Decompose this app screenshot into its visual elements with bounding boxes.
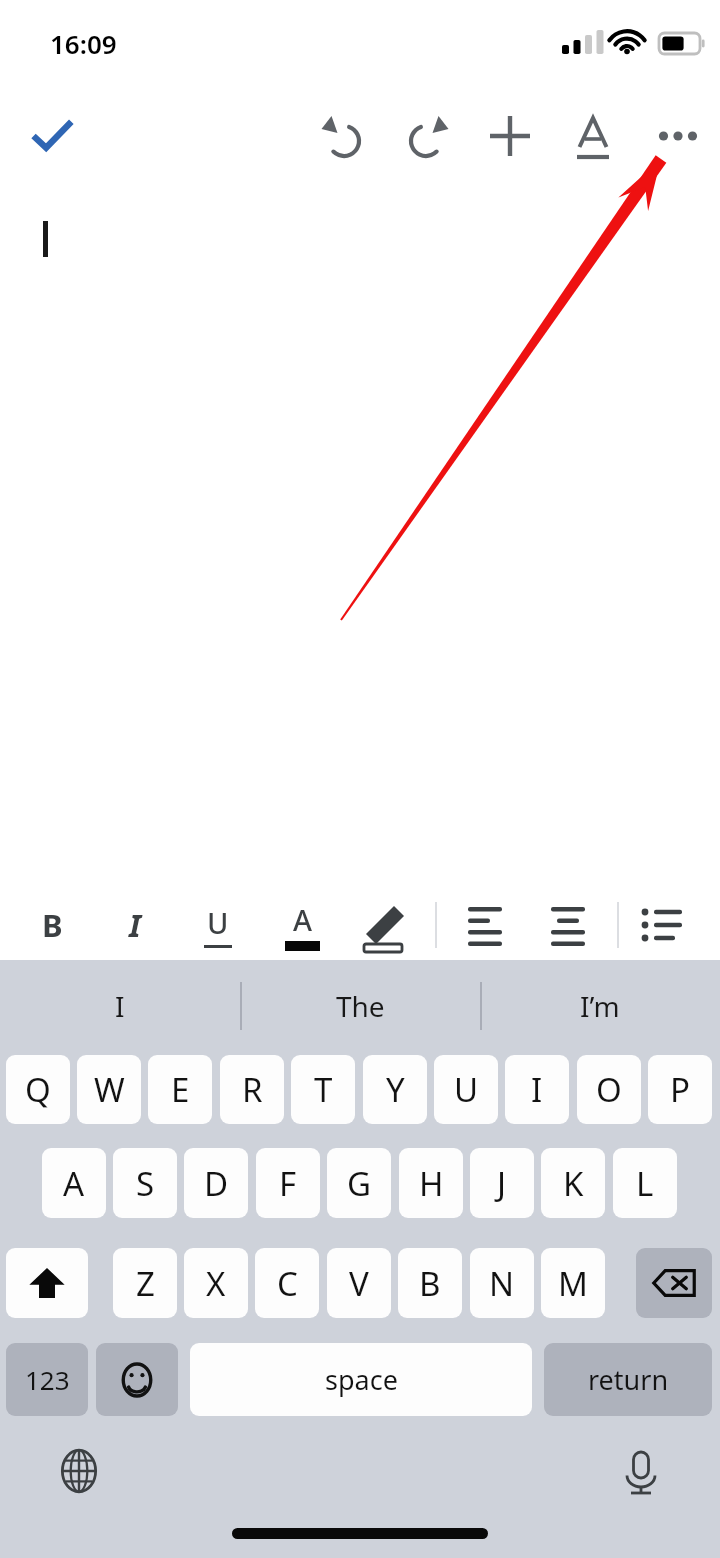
staticText: G: [347, 1161, 372, 1206]
staticText: return: [588, 1361, 669, 1398]
staticText: N: [489, 1261, 515, 1306]
button[interactable]: U: [434, 1055, 498, 1124]
button[interactable]: N: [470, 1248, 534, 1318]
staticText: B: [419, 1261, 441, 1306]
staticText: Y: [386, 1067, 405, 1112]
button[interactable]: R: [220, 1055, 284, 1124]
button[interactable]: More options: [645, 103, 711, 169]
button[interactable]: space: [190, 1343, 532, 1416]
button[interactable]: Bulleted list: [630, 892, 696, 958]
button[interactable]: Numbers: [6, 1343, 88, 1416]
button[interactable]: Undo: [311, 103, 377, 169]
staticText: S: [136, 1161, 155, 1206]
staticText: K: [563, 1161, 584, 1206]
staticText: H: [419, 1161, 444, 1206]
staticText: 16:09: [50, 26, 117, 61]
staticText: U: [207, 903, 229, 942]
staticText: V: [349, 1261, 369, 1306]
staticText: T: [314, 1067, 333, 1112]
button[interactable]: Backspace: [636, 1248, 712, 1318]
staticText: J: [497, 1161, 507, 1206]
button[interactable]: Align center: [535, 892, 601, 958]
button[interactable]: W: [77, 1055, 141, 1124]
button[interactable]: E: [148, 1055, 212, 1124]
staticText: B: [42, 904, 63, 946]
button[interactable]: M: [541, 1248, 605, 1318]
button[interactable]: H: [399, 1148, 463, 1218]
button[interactable]: Q: [6, 1055, 70, 1124]
button[interactable]: Highlight: [352, 892, 418, 958]
button[interactable]: L: [613, 1148, 677, 1218]
button[interactable]: Underline: [185, 892, 251, 958]
staticText: space: [325, 1361, 398, 1398]
staticText: The: [336, 987, 385, 1025]
staticText: R: [242, 1067, 263, 1112]
staticText: O: [596, 1067, 622, 1112]
button[interactable]: Voice input: [606, 1436, 676, 1506]
button[interactable]: Z: [113, 1248, 177, 1318]
staticText: Q: [25, 1067, 51, 1112]
button[interactable]: Bold: [19, 892, 85, 958]
button[interactable]: Emoji: [96, 1343, 178, 1416]
button[interactable]: Shift: [6, 1248, 88, 1318]
button[interactable]: Italic: [102, 892, 168, 958]
button[interactable]: V: [327, 1248, 391, 1318]
button[interactable]: Done: [19, 103, 85, 169]
button[interactable]: P: [648, 1055, 712, 1124]
button[interactable]: Insert: [477, 103, 543, 169]
button[interactable]: C: [255, 1248, 319, 1318]
button[interactable]: B: [398, 1248, 462, 1318]
button[interactable]: I’m: [480, 960, 720, 1052]
button[interactable]: Align left: [452, 892, 518, 958]
button[interactable]: Y: [363, 1055, 427, 1124]
button[interactable]: T: [291, 1055, 355, 1124]
staticText: Z: [136, 1261, 155, 1306]
staticText: M: [558, 1261, 588, 1306]
button[interactable]: X: [184, 1248, 248, 1318]
staticText: L: [636, 1161, 654, 1206]
button[interactable]: Redo: [393, 103, 459, 169]
staticText: 123: [25, 1362, 70, 1397]
staticText: I: [531, 1067, 543, 1112]
button[interactable]: O: [577, 1055, 641, 1124]
button[interactable]: Text format: [560, 103, 626, 169]
staticText: A: [63, 1161, 85, 1206]
button[interactable]: The: [240, 960, 480, 1052]
button[interactable]: K: [541, 1148, 605, 1218]
button[interactable]: G: [327, 1148, 391, 1218]
button[interactable]: I: [505, 1055, 569, 1124]
button[interactable]: Change keyboard: [44, 1436, 114, 1506]
button[interactable]: F: [256, 1148, 320, 1218]
staticText: U: [454, 1067, 479, 1112]
staticText: E: [171, 1067, 190, 1112]
button[interactable]: I: [0, 960, 240, 1052]
button[interactable]: A: [42, 1148, 106, 1218]
button[interactable]: S: [113, 1148, 177, 1218]
staticText: F: [279, 1161, 297, 1206]
staticText: I: [115, 987, 125, 1025]
staticText: I’m: [580, 987, 620, 1025]
staticText: A: [293, 900, 312, 939]
button[interactable]: J: [470, 1148, 534, 1218]
button[interactable]: Return: [544, 1343, 712, 1416]
staticText: C: [277, 1261, 298, 1306]
staticText: I: [129, 904, 141, 946]
staticText: X: [206, 1261, 226, 1306]
staticText: D: [204, 1161, 229, 1206]
button[interactable]: Text color: [269, 892, 335, 958]
button[interactable]: D: [184, 1148, 248, 1218]
staticText: W: [94, 1067, 125, 1112]
staticText: P: [670, 1067, 690, 1112]
